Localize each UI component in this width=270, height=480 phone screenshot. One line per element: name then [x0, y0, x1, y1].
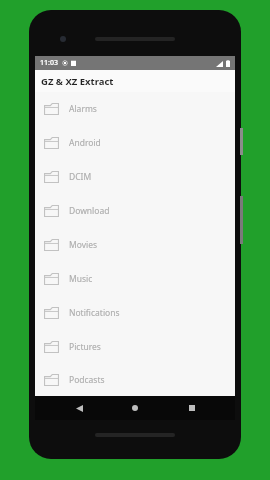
button[interactable]: Android [35, 126, 235, 160]
button[interactable]: Download [35, 194, 235, 228]
staticText: Alarms [69, 103, 97, 115]
staticText: Download [69, 205, 110, 217]
staticText: Notifications [69, 307, 120, 319]
staticText: Music [69, 273, 93, 285]
button[interactable]: GZ & XZ Extract [35, 70, 235, 92]
staticText: Pictures [69, 341, 101, 353]
button[interactable]: Home [122, 396, 148, 420]
button[interactable]: DCIM [35, 160, 235, 194]
button[interactable]: Movies [35, 228, 235, 262]
button[interactable]: Alarms [35, 92, 235, 126]
button[interactable]: Back [66, 396, 92, 420]
button[interactable]: Music [35, 262, 235, 296]
button[interactable]: Pictures [35, 330, 235, 364]
staticText: GZ & XZ Extract [41, 75, 114, 88]
staticText: Podcasts [69, 374, 105, 386]
button[interactable]: Podcasts [35, 364, 235, 396]
staticText: Android [69, 137, 101, 149]
staticText: DCIM [69, 171, 92, 183]
button[interactable]: Notifications [35, 296, 235, 330]
button[interactable]: Recents [179, 396, 205, 420]
staticText: 11:03 [40, 58, 58, 68]
staticText: Movies [69, 239, 98, 251]
